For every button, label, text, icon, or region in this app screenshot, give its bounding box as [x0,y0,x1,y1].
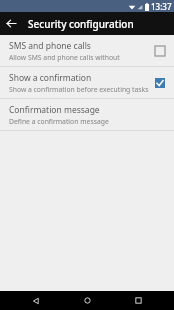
staticText: Security configuration [28,17,134,31]
button[interactable]: Navigate up [0,12,23,35]
staticText: Show a confirmation before executing tas… [9,85,149,94]
staticText: Allow SMS and phone calls without confir… [9,53,149,62]
button[interactable]: Confirmation message [0,99,174,130]
button[interactable]: SMS and phone calls [0,35,174,66]
staticText: SMS and phone calls [9,40,91,52]
staticText: Confirmation message [9,104,100,116]
staticText: 13:37 [151,1,172,12]
button[interactable]: Checked [153,76,167,90]
button[interactable]: Unchecked [153,44,167,58]
staticText: Define a confirmation message [9,117,109,126]
button[interactable]: Back [21,291,51,310]
staticText: Show a confirmation [9,72,92,84]
button[interactable]: Recent apps [123,291,153,310]
button[interactable]: Show a confirmation [0,67,174,98]
button[interactable]: Home [72,291,102,310]
